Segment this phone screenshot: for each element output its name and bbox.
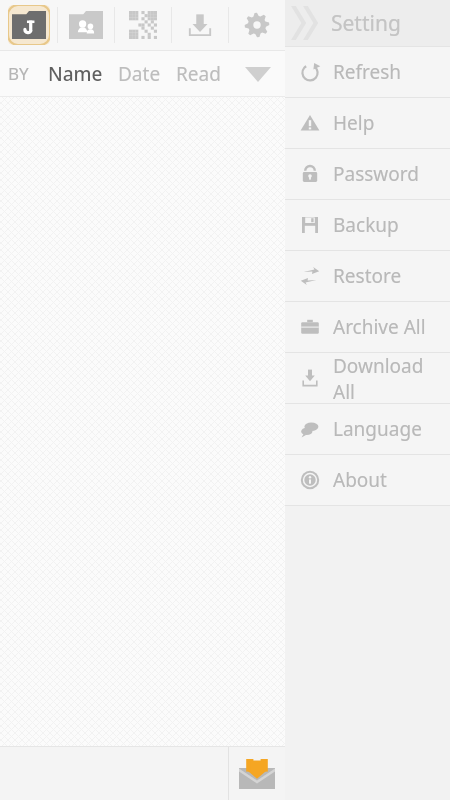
button[interactable]: Shared folder	[58, 0, 114, 50]
button[interactable]: Receive mail	[228, 747, 285, 800]
button[interactable]: Restore	[285, 251, 450, 301]
button[interactable]: Download All	[285, 353, 450, 403]
staticText: Setting	[331, 9, 401, 38]
button[interactable]: My folder	[0, 0, 57, 50]
staticText: BY	[8, 62, 29, 85]
button[interactable]: Download	[172, 0, 228, 50]
button[interactable]: Settings	[229, 0, 285, 50]
button[interactable]: Refresh	[285, 47, 450, 97]
staticText: Refresh	[333, 59, 402, 85]
staticText: Restore	[333, 263, 402, 289]
staticText: Password	[333, 161, 419, 187]
staticText: Help	[333, 110, 375, 136]
button[interactable]: Archive All	[285, 302, 450, 352]
button[interactable]: Name	[45, 55, 106, 93]
staticText: About	[333, 467, 387, 493]
button[interactable]: About	[285, 455, 450, 505]
button[interactable]: Read	[173, 55, 224, 93]
staticText: Name	[48, 61, 103, 87]
staticText: Date	[118, 61, 161, 87]
staticText: Download All	[333, 353, 450, 403]
staticText: Language	[333, 416, 422, 442]
button[interactable]: QR code	[115, 0, 171, 50]
staticText: Read	[176, 61, 221, 87]
button[interactable]: Backup	[285, 200, 450, 250]
button[interactable]: Language	[285, 404, 450, 454]
staticText: Archive All	[333, 314, 426, 340]
button[interactable]: Help	[285, 98, 450, 148]
button[interactable]: Password	[285, 149, 450, 199]
staticText: Backup	[333, 212, 399, 238]
button[interactable]: Sort direction	[238, 54, 278, 94]
button[interactable]: Date	[115, 55, 164, 93]
